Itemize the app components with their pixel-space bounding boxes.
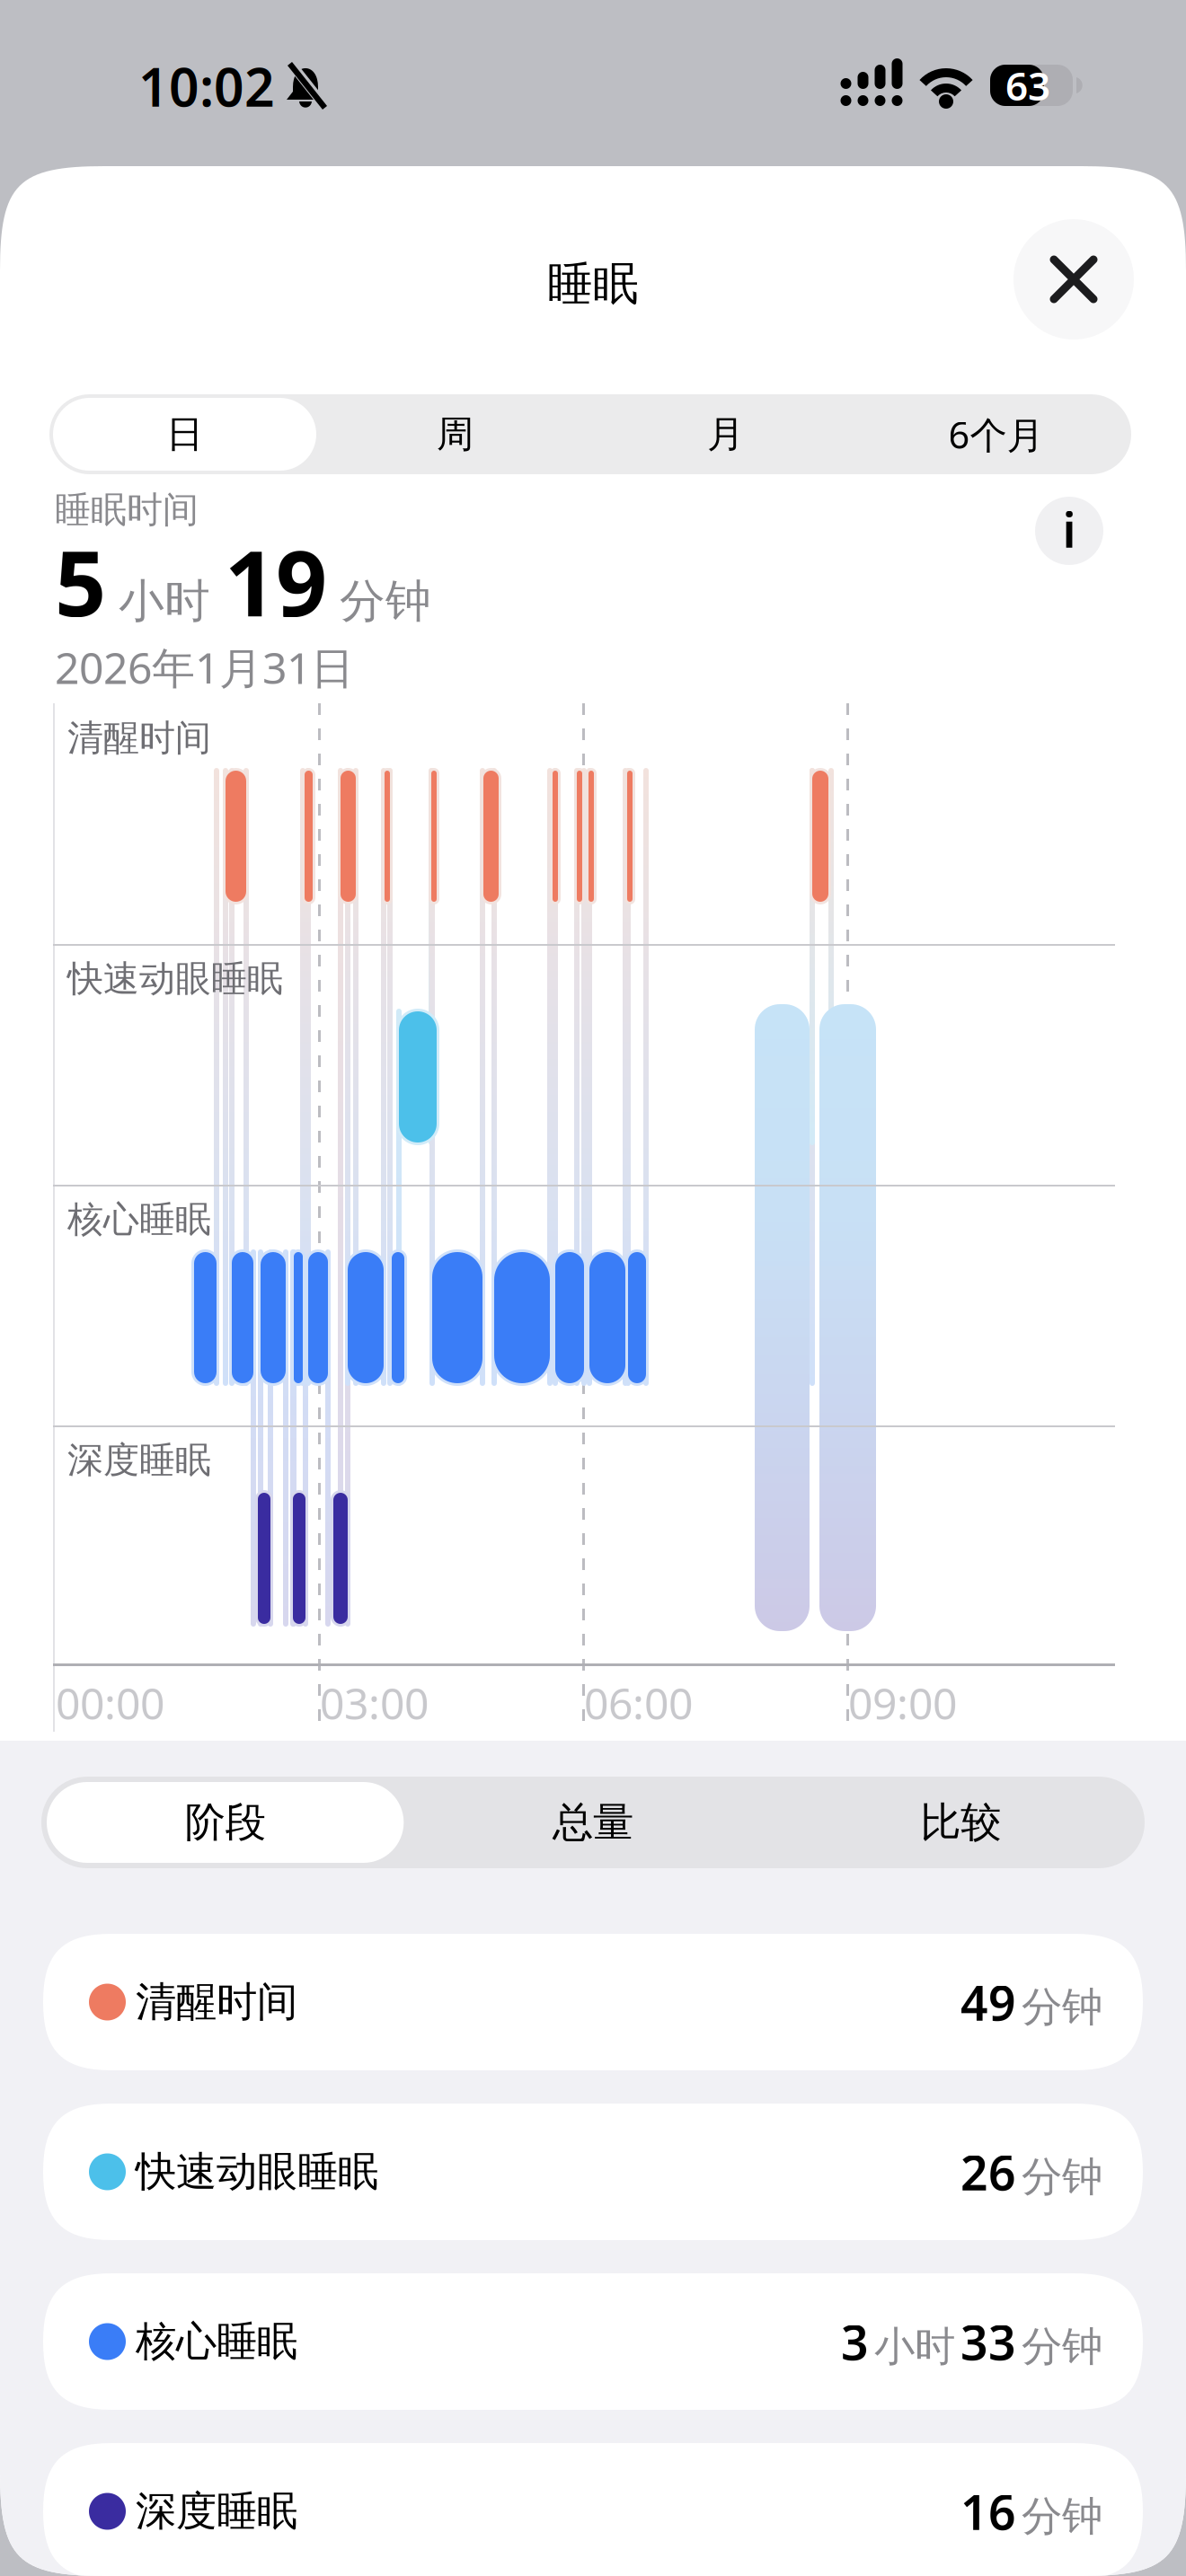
button[interactable]: 阶段 [41, 1777, 409, 1868]
button[interactable]: 快速动眼睡眠 [43, 2104, 1143, 2240]
staticText: 阶段 [185, 1797, 266, 1847]
staticText: 33 [960, 2310, 1016, 2373]
staticText: 核心睡眠 [136, 2317, 297, 2367]
staticText: 分钟 [1022, 2491, 1102, 2541]
button[interactable]: 关闭 [1013, 219, 1134, 340]
staticText: 月 [707, 411, 744, 457]
staticText: 核心睡眠 [67, 1197, 211, 1241]
button[interactable]: 比较 [777, 1777, 1145, 1868]
staticText: 清醒时间 [136, 1977, 297, 2027]
staticText: 分钟 [1022, 1982, 1102, 2032]
staticText: 清醒时间 [67, 716, 211, 760]
staticText: 深度睡眠 [136, 2486, 297, 2536]
staticText: 5 [55, 522, 106, 641]
staticText: 10:02 [138, 51, 275, 121]
staticText: 2026年1月31日 [55, 639, 354, 696]
staticText: 周 [437, 411, 474, 457]
staticText: 03:00 [320, 1674, 429, 1731]
button[interactable]: 信息 [1035, 497, 1103, 565]
staticText: 26 [960, 2140, 1016, 2204]
button[interactable]: 清醒时间 [43, 1934, 1143, 2070]
staticText: 63 [1005, 59, 1050, 112]
button[interactable]: 核心睡眠 [43, 2273, 1143, 2410]
staticText: 06:00 [584, 1674, 693, 1731]
staticText: 09:00 [848, 1674, 957, 1731]
staticText: 6个月 [948, 410, 1044, 459]
button[interactable]: 深度睡眠 [43, 2443, 1143, 2576]
staticText: 小时 [874, 2322, 955, 2372]
staticText: 19 [225, 522, 327, 641]
staticText: 总量 [553, 1797, 633, 1847]
staticText: 睡眠时间 [55, 488, 199, 532]
staticText: 睡眠 [547, 256, 639, 312]
staticText: 小时 [119, 573, 210, 629]
staticText: 49 [960, 1970, 1016, 2034]
staticText: 日 [166, 411, 203, 457]
button[interactable]: 总量 [409, 1777, 777, 1868]
button[interactable]: 周 [320, 394, 590, 474]
staticText: 00:00 [56, 1674, 164, 1731]
staticText: 分钟 [1022, 2322, 1102, 2372]
button[interactable]: 日 [49, 394, 320, 474]
button[interactable]: 6个月 [861, 394, 1131, 474]
staticText: 比较 [920, 1797, 1001, 1847]
staticText: 16 [960, 2480, 1016, 2543]
staticText: 3 [841, 2310, 869, 2373]
staticText: i [1062, 497, 1076, 561]
staticText: 深度睡眠 [67, 1438, 211, 1482]
staticText: 分钟 [340, 573, 431, 629]
staticText: 快速动眼睡眠 [67, 957, 283, 1001]
staticText: 分钟 [1022, 2152, 1102, 2202]
staticText: 快速动眼睡眠 [136, 2147, 378, 2197]
button[interactable]: 月 [590, 394, 861, 474]
